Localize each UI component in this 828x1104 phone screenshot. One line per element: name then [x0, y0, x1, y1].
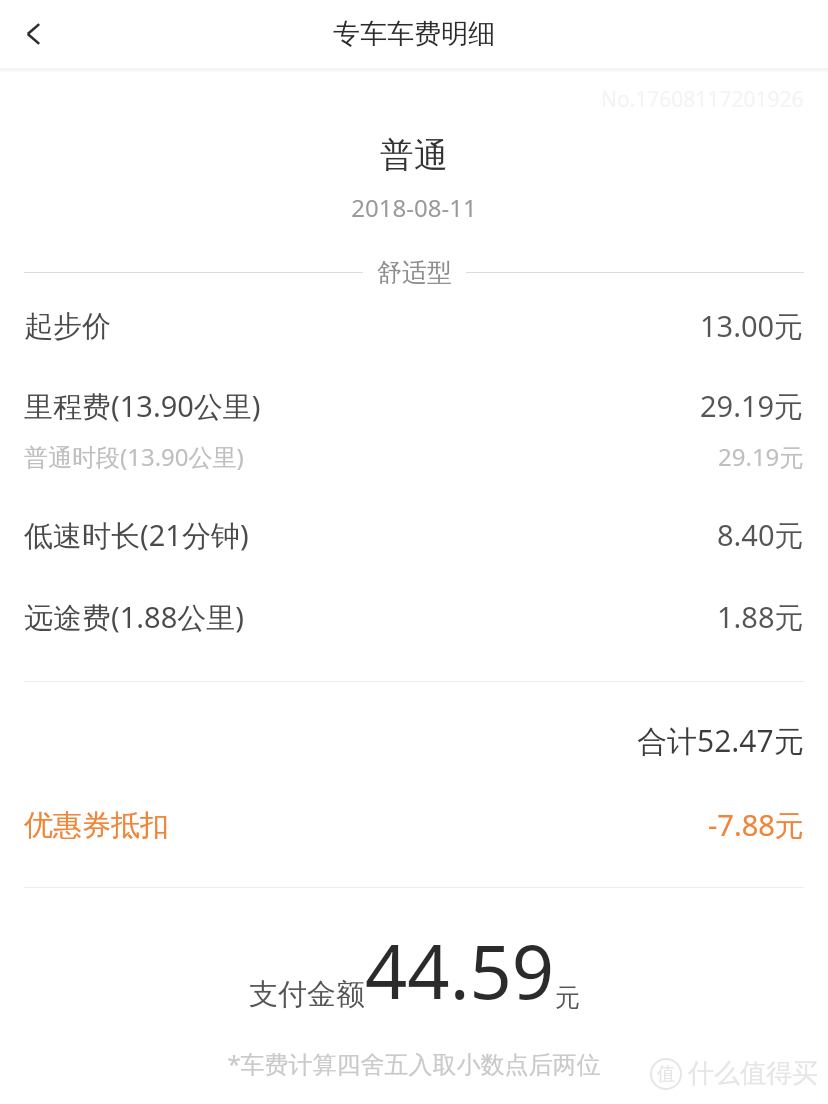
- staticText: 29.19元: [718, 440, 804, 473]
- staticText: 优惠券抵扣: [24, 807, 169, 844]
- staticText: 专车车费明细: [333, 17, 495, 51]
- staticText: 里程费(13.90公里): [24, 386, 261, 426]
- button[interactable]: 低速时长(21分钟): [0, 515, 828, 555]
- staticText: -7.88元: [708, 805, 804, 845]
- button[interactable]: 优惠券抵扣: [0, 805, 828, 845]
- staticText: 远途费(1.88公里): [24, 597, 244, 637]
- staticText: 普通时段(13.90公里): [24, 440, 244, 473]
- staticText: 舒适型: [377, 257, 452, 288]
- staticText: 2018-08-11: [0, 191, 828, 224]
- staticText: 低速时长(21分钟): [24, 515, 249, 555]
- staticText: 1.88元: [717, 597, 804, 637]
- staticText: *车费计算四舍五入取小数点后两位: [0, 1047, 828, 1080]
- button[interactable]: 普通时段(13.90公里): [0, 440, 828, 473]
- staticText: 元: [555, 982, 580, 1013]
- staticText: 13.00元: [700, 306, 804, 346]
- button[interactable]: 起步价: [0, 306, 828, 346]
- button[interactable]: 远途费(1.88公里): [0, 597, 828, 637]
- staticText: No.17608117201926: [601, 85, 804, 114]
- staticText: 合计52.47元: [637, 720, 804, 761]
- staticText: 普通: [0, 134, 828, 177]
- staticText: 支付金额: [249, 976, 365, 1013]
- staticText: 起步价: [24, 308, 111, 345]
- button[interactable]: Back: [0, 0, 68, 68]
- staticText: 什么值得买: [688, 1057, 818, 1090]
- staticText: 29.19元: [700, 386, 804, 426]
- staticText: 44.59: [365, 920, 555, 1021]
- staticText: 8.40元: [717, 515, 804, 555]
- staticText: 值: [657, 1063, 675, 1086]
- button[interactable]: 里程费(13.90公里): [0, 386, 828, 426]
